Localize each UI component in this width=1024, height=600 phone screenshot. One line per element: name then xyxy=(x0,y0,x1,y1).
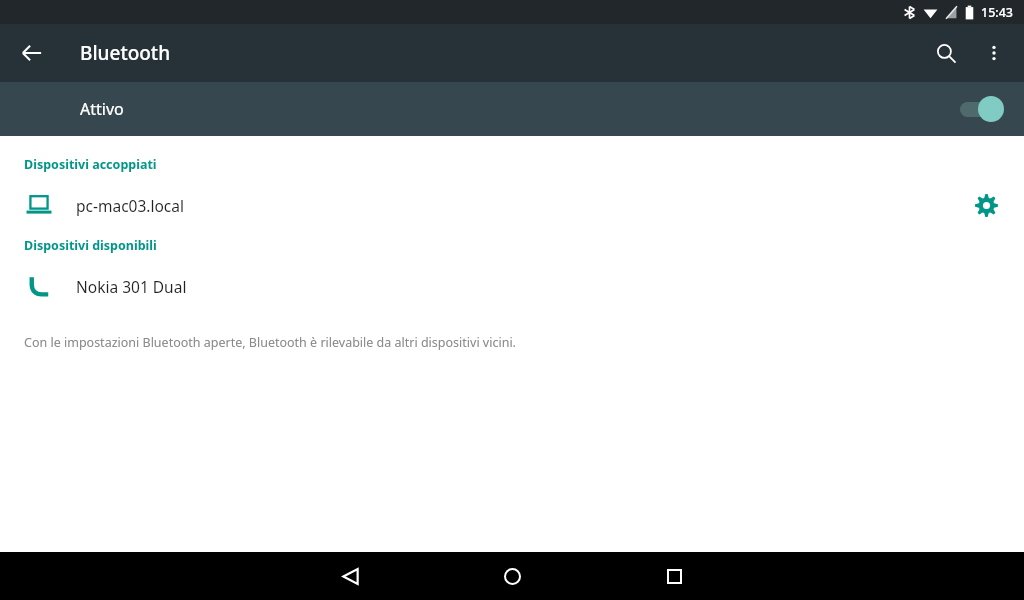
staticText: Dispositivi disponibili xyxy=(24,237,157,254)
button[interactable]: Back xyxy=(8,29,56,77)
button[interactable]: Nokia 301 Dual xyxy=(0,256,1024,316)
button[interactable]: Back xyxy=(326,552,374,600)
staticText: pc-mac03.local xyxy=(76,195,184,216)
staticText: Dispositivi accoppiati xyxy=(24,156,157,173)
staticText: Attivo xyxy=(80,98,124,120)
staticText: Bluetooth xyxy=(80,40,171,66)
button[interactable]: Attivo xyxy=(0,82,1024,136)
staticText: Con le impostazioni Bluetooth aperte, Bl… xyxy=(24,334,516,351)
button[interactable]: More options xyxy=(970,29,1018,77)
button[interactable]: Device settings xyxy=(962,181,1010,229)
staticText: Nokia 301 Dual xyxy=(76,276,187,297)
button[interactable]: Search xyxy=(922,29,970,77)
button[interactable]: pc-mac03.local xyxy=(0,175,1024,235)
button[interactable]: Home xyxy=(488,552,536,600)
button[interactable]: Recent apps xyxy=(650,552,698,600)
staticText: 15:43 xyxy=(981,4,1014,21)
